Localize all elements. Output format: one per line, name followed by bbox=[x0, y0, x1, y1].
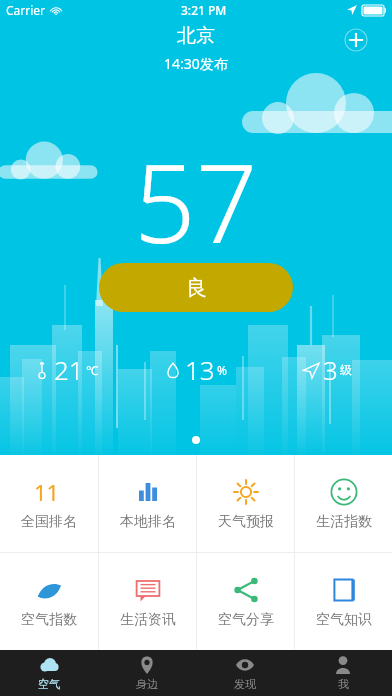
button[interactable]: 我 bbox=[294, 650, 392, 696]
staticText: 北京 bbox=[177, 24, 215, 48]
button[interactable]: 发现 bbox=[196, 650, 294, 696]
button[interactable]: 本地排名 bbox=[99, 455, 196, 552]
staticText: 3 bbox=[323, 352, 338, 387]
button[interactable]: 生活指数 bbox=[295, 455, 392, 552]
staticText: 14:30发布 bbox=[164, 54, 228, 73]
button[interactable]: Add city bbox=[344, 28, 368, 52]
button[interactable]: 空气分享 bbox=[197, 553, 294, 650]
staticText: 天气预报 bbox=[218, 513, 274, 531]
button[interactable]: 空气 bbox=[0, 650, 98, 696]
staticText: 发现 bbox=[234, 677, 256, 691]
staticText: 3:21 PM bbox=[181, 2, 227, 18]
button[interactable]: 良 bbox=[99, 263, 293, 312]
staticText: 级 bbox=[340, 362, 352, 377]
staticText: 良 bbox=[186, 275, 207, 301]
staticText: 本地排名 bbox=[120, 513, 176, 531]
staticText: Carrier bbox=[6, 2, 46, 18]
staticText: 生活指数 bbox=[316, 513, 372, 531]
button[interactable]: 空气指数 bbox=[0, 553, 98, 650]
staticText: 空气 bbox=[38, 677, 60, 691]
staticText: 空气分享 bbox=[218, 611, 274, 629]
button[interactable]: 天气预报 bbox=[197, 455, 294, 552]
staticText: 身边 bbox=[136, 677, 158, 691]
staticText: 21 bbox=[54, 352, 84, 387]
staticText: ℃ bbox=[86, 362, 98, 378]
button[interactable]: 空气知识 bbox=[295, 553, 392, 650]
staticText: % bbox=[217, 362, 227, 378]
staticText: 空气指数 bbox=[21, 611, 77, 629]
button[interactable]: 116 bbox=[0, 455, 98, 552]
staticText: 116 bbox=[34, 477, 64, 507]
staticText: 57 bbox=[134, 128, 258, 275]
staticText: 空气知识 bbox=[316, 611, 372, 629]
staticText: 生活资讯 bbox=[120, 611, 176, 629]
button[interactable]: 身边 bbox=[98, 650, 196, 696]
button[interactable]: 生活资讯 bbox=[99, 553, 196, 650]
staticText: 13 bbox=[185, 352, 215, 387]
staticText: 全国排名 bbox=[21, 513, 77, 531]
staticText: 我 bbox=[338, 677, 349, 691]
